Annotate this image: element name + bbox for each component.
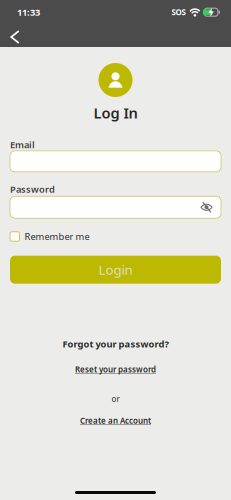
staticText: Reset your password [75, 364, 156, 375]
staticText: Create an Account [80, 415, 151, 426]
button[interactable]: Login [10, 256, 221, 284]
staticText: Login [98, 261, 132, 278]
staticText: Log In [93, 103, 137, 122]
staticText: Password [10, 183, 55, 195]
staticText: Email [10, 138, 35, 151]
staticText: 11:33 [17, 6, 40, 18]
button[interactable]: Remember me [10, 230, 89, 243]
staticText: Remember me [24, 230, 89, 243]
staticText: SOS [171, 7, 185, 17]
staticText: Forgot your password? [62, 338, 168, 350]
button[interactable]: Create an Account [80, 415, 151, 426]
button[interactable]: Show password [200, 202, 221, 213]
staticText: or [111, 394, 119, 404]
button[interactable]: Reset your password [75, 364, 156, 375]
button[interactable]: Back [0, 30, 20, 44]
